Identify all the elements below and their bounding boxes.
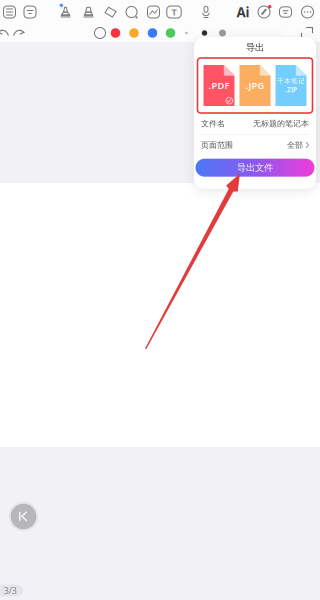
- button[interactable]: Red: [111, 28, 120, 38]
- button[interactable]: Medium stroke: [202, 30, 207, 36]
- button[interactable]: Pages: [24, 6, 36, 18]
- button[interactable]: Redo: [13, 27, 25, 39]
- staticText: 3/3: [3, 584, 16, 597]
- button[interactable]: Expand canvas: [301, 27, 312, 38]
- staticText: 无标题的笔记本: [253, 119, 309, 128]
- staticText: 全部: [287, 140, 303, 150]
- button[interactable]: Stickers: [258, 6, 270, 18]
- staticText: 千本笔记: [277, 77, 305, 85]
- button[interactable]: Thin stroke: [185, 32, 188, 34]
- button[interactable]: Undo: [0, 27, 9, 39]
- staticText: .JPG: [245, 79, 264, 92]
- button[interactable]: .JPG: [239, 65, 270, 106]
- staticText: .ZIP: [285, 85, 297, 94]
- staticText: 文件名: [201, 119, 225, 128]
- button[interactable]: 页面范围: [194, 135, 316, 156]
- button[interactable]: Insert image: [147, 6, 159, 18]
- button[interactable]: Text box: [167, 6, 181, 18]
- button[interactable]: .PDF: [203, 65, 234, 106]
- button[interactable]: Highlighter: [82, 5, 95, 18]
- button[interactable]: 导出文件: [195, 159, 314, 177]
- staticText: .PDF: [208, 79, 229, 92]
- button[interactable]: Record audio: [200, 6, 212, 18]
- button[interactable]: Ai: [236, 3, 249, 21]
- button[interactable]: Custom colour: [94, 27, 105, 38]
- button[interactable]: Thick stroke: [219, 29, 226, 36]
- button[interactable]: 3/3: [0, 584, 23, 596]
- staticText: 导出: [246, 42, 264, 53]
- staticText: 导出文件: [237, 162, 273, 173]
- button[interactable]: Comments: [279, 7, 291, 17]
- staticText: Ai: [236, 3, 249, 21]
- button[interactable]: Pen: [59, 5, 72, 18]
- button[interactable]: Eraser: [104, 6, 116, 18]
- staticText: 页面范围: [201, 140, 233, 150]
- button[interactable]: Collapse page thumbnails: [10, 503, 36, 529]
- button[interactable]: 文件名: [194, 113, 316, 134]
- button[interactable]: Blue: [148, 28, 157, 38]
- button[interactable]: Green: [166, 28, 175, 38]
- staticText: T: [171, 6, 176, 18]
- button[interactable]: 千本笔记: [275, 65, 306, 106]
- button[interactable]: More: [301, 6, 313, 18]
- button[interactable]: Lasso select: [125, 6, 137, 18]
- button[interactable]: Orange: [129, 28, 139, 38]
- button[interactable]: Outline: [3, 6, 15, 18]
